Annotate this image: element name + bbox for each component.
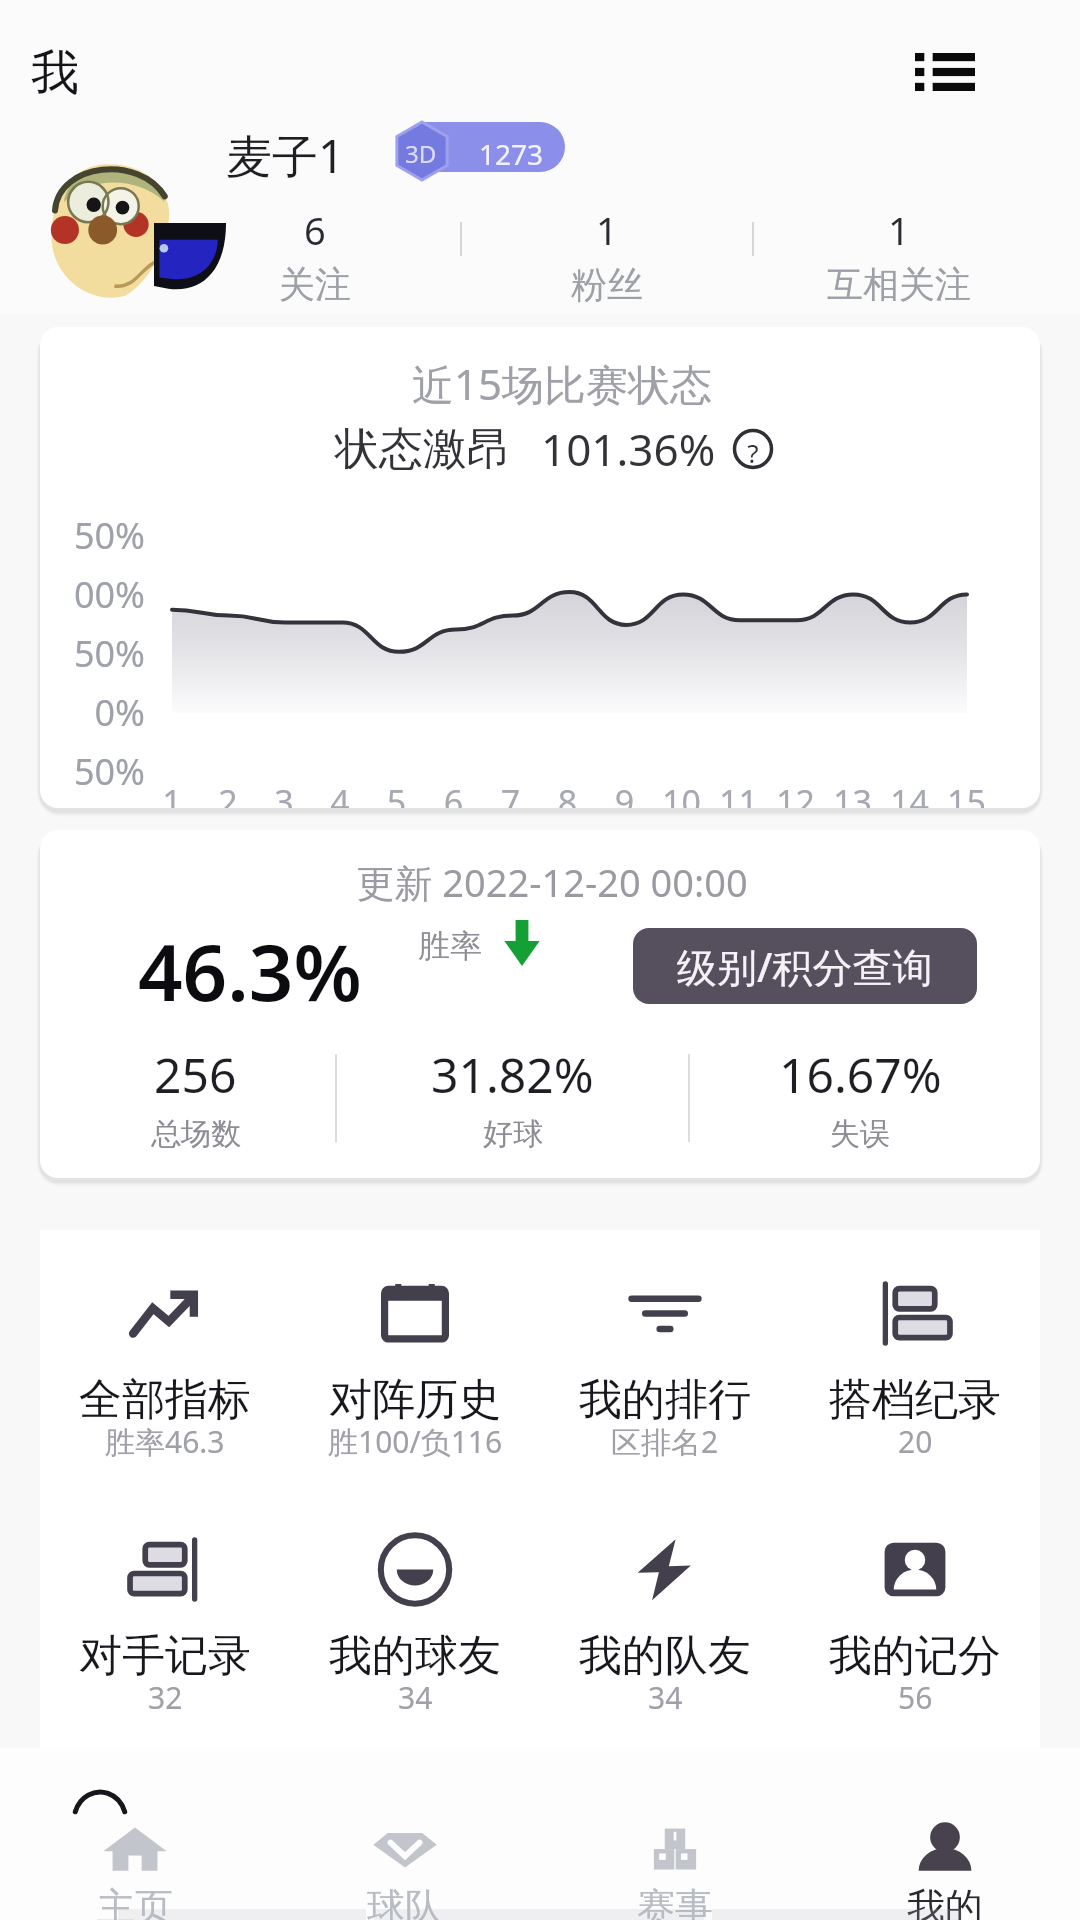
- staticText: 7: [482, 779, 539, 808]
- staticText: 0%: [40, 688, 145, 737]
- staticText: 状态激昂: [335, 422, 511, 477]
- button[interactable]: 级别/积分查询: [633, 928, 977, 1004]
- button[interactable]: 对手记录: [40, 1536, 290, 1724]
- button[interactable]: 31.82%: [337, 1042, 688, 1153]
- staticText: 50%: [40, 511, 145, 560]
- staticText: 4: [312, 779, 368, 808]
- staticText: 32: [148, 1677, 183, 1718]
- staticText: 我的记分: [829, 1629, 1001, 1683]
- staticText: 我的队友: [579, 1629, 751, 1683]
- button[interactable]: 我的: [810, 1821, 1080, 1920]
- staticText: 对手记录: [79, 1629, 251, 1683]
- button[interactable]: 6: [170, 204, 460, 307]
- staticText: 赛事: [637, 1883, 713, 1920]
- staticText: 胜率46.3: [105, 1421, 225, 1462]
- staticText: ?: [732, 435, 774, 470]
- staticText: 好球: [483, 1115, 543, 1153]
- staticText: 56: [898, 1677, 933, 1718]
- staticText: 关注: [279, 262, 351, 307]
- staticText: 主页: [97, 1883, 173, 1920]
- staticText: 粉丝: [571, 262, 643, 307]
- button[interactable]: 256: [56, 1042, 335, 1153]
- staticText: 50%: [40, 747, 145, 796]
- button[interactable]: 1: [754, 204, 1044, 307]
- staticText: 总场数: [151, 1115, 241, 1153]
- staticText: 我: [31, 43, 79, 103]
- button[interactable]: 16.67%: [690, 1042, 1030, 1153]
- staticText: 失误: [830, 1115, 890, 1153]
- button[interactable]: 主页: [0, 1821, 270, 1920]
- button[interactable]: Menu: [897, 35, 993, 109]
- staticText: 5: [368, 779, 425, 808]
- button[interactable]: 麦子1: [226, 124, 345, 187]
- staticText: 全部指标: [79, 1373, 251, 1427]
- staticText: 6: [425, 779, 482, 808]
- button[interactable]: 3D: [393, 122, 565, 180]
- staticText: 我的: [907, 1883, 983, 1920]
- staticText: 8: [539, 779, 596, 808]
- staticText: 34: [398, 1677, 433, 1718]
- staticText: 12: [767, 779, 824, 808]
- button[interactable]: 全部指标: [40, 1280, 290, 1468]
- staticText: 14: [881, 779, 938, 808]
- button[interactable]: Profile photo: [46, 160, 226, 300]
- button[interactable]: 我的排行: [540, 1280, 790, 1468]
- staticText: 区排名2: [611, 1421, 719, 1462]
- staticText: 更新 2022-12-20 00:00: [52, 856, 1040, 908]
- staticText: 3D: [405, 137, 437, 170]
- staticText: 互相关注: [827, 262, 971, 307]
- staticText: 搭档纪录: [829, 1373, 1001, 1427]
- staticText: 9: [596, 779, 653, 808]
- staticText: 34: [648, 1677, 683, 1718]
- staticText: 20: [898, 1421, 933, 1462]
- staticText: 00%: [40, 570, 145, 619]
- staticText: 101.36%: [541, 419, 716, 479]
- staticText: 对阵历史: [329, 1373, 501, 1427]
- staticText: 13: [824, 779, 881, 808]
- staticText: 胜率: [418, 926, 482, 966]
- staticText: 256: [154, 1042, 237, 1107]
- staticText: 级别/积分查询: [677, 939, 933, 994]
- staticText: 1: [888, 204, 910, 256]
- button[interactable]: 球队: [270, 1821, 540, 1920]
- staticText: 胜100/负116: [328, 1421, 503, 1462]
- staticText: 1273: [479, 135, 544, 173]
- button[interactable]: 我的记分: [790, 1536, 1040, 1724]
- staticText: 1: [144, 779, 200, 808]
- button[interactable]: 对阵历史: [290, 1280, 540, 1468]
- staticText: 我的排行: [579, 1373, 751, 1427]
- staticText: 16.67%: [779, 1042, 942, 1107]
- staticText: 6: [304, 204, 326, 256]
- staticText: 50%: [40, 629, 145, 678]
- staticText: 15: [938, 779, 995, 808]
- staticText: 2: [200, 779, 256, 808]
- staticText: 球队: [367, 1883, 443, 1920]
- staticText: 我的球友: [329, 1629, 501, 1683]
- button[interactable]: 我的球友: [290, 1536, 540, 1724]
- staticText: 46.3%: [138, 918, 362, 1024]
- staticText: 11: [710, 779, 767, 808]
- staticText: 近15场比赛状态: [62, 355, 1040, 412]
- button[interactable]: Help: [732, 428, 774, 470]
- button[interactable]: 搭档纪录: [790, 1280, 1040, 1468]
- staticText: 1: [596, 204, 618, 256]
- button[interactable]: 赛事: [540, 1821, 810, 1920]
- staticText: 3: [256, 779, 312, 808]
- button[interactable]: 我的队友: [540, 1536, 790, 1724]
- button[interactable]: 1: [462, 204, 752, 307]
- staticText: 10: [653, 779, 710, 808]
- staticText: 31.82%: [431, 1042, 594, 1107]
